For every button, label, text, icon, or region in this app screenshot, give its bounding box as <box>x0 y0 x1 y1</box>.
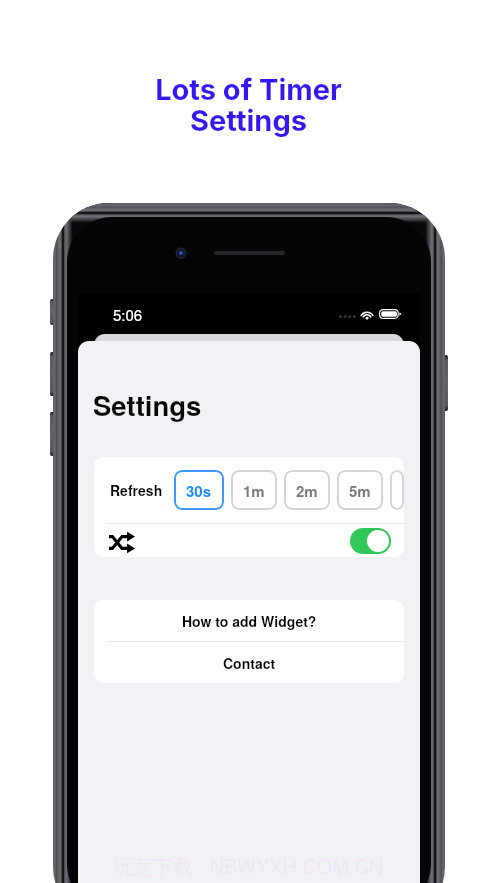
staticText: 5m <box>349 480 371 501</box>
staticText: How to add Widget? <box>182 611 317 631</box>
staticText: Refresh <box>110 480 163 500</box>
staticText: 2m <box>296 480 318 501</box>
button[interactable]: 5m <box>337 470 383 510</box>
staticText: Contact <box>223 653 276 673</box>
staticText: Settings <box>93 385 202 424</box>
staticText: 1m <box>243 480 265 501</box>
button[interactable]: 10m <box>390 470 404 510</box>
button[interactable]: Contact <box>94 642 404 683</box>
button[interactable]: 30s <box>174 470 224 510</box>
button[interactable]: 1m <box>231 470 277 510</box>
button[interactable]: 2m <box>284 470 330 510</box>
staticText: 30s <box>186 480 212 501</box>
button[interactable]: How to add Widget? <box>94 600 404 641</box>
button[interactable]: Shuffle <box>109 524 135 557</box>
staticText: 5:06 <box>113 304 143 325</box>
button[interactable]: Shuffle enabled <box>350 528 391 554</box>
staticText: Lots of Timer Settings <box>155 72 342 138</box>
